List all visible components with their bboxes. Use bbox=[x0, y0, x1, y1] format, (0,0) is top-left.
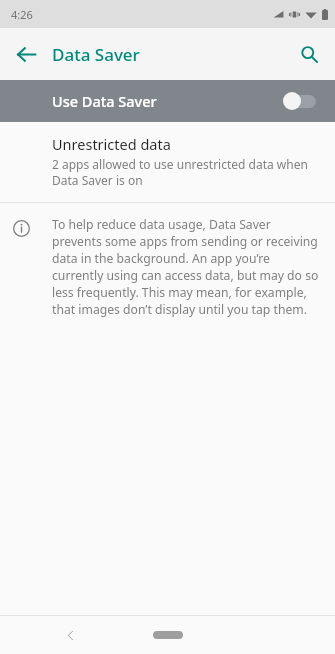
staticText: Use Data Saver bbox=[52, 91, 283, 111]
button[interactable]: Search bbox=[287, 32, 331, 76]
button[interactable]: Navigate up bbox=[4, 32, 48, 76]
staticText: Data Saver bbox=[52, 43, 140, 66]
staticText: 4:26 bbox=[11, 7, 33, 22]
staticText: 2 apps allowed to use unrestricted data … bbox=[52, 156, 319, 188]
button[interactable]: Unrestricted data bbox=[0, 122, 335, 202]
button[interactable]: Back bbox=[54, 619, 86, 651]
staticText: To help reduce data usage, Data Saver pr… bbox=[52, 216, 321, 318]
staticText: Unrestricted data bbox=[52, 134, 171, 154]
button[interactable]: Use Data Saver bbox=[0, 80, 335, 122]
button[interactable]: Home bbox=[145, 623, 191, 647]
